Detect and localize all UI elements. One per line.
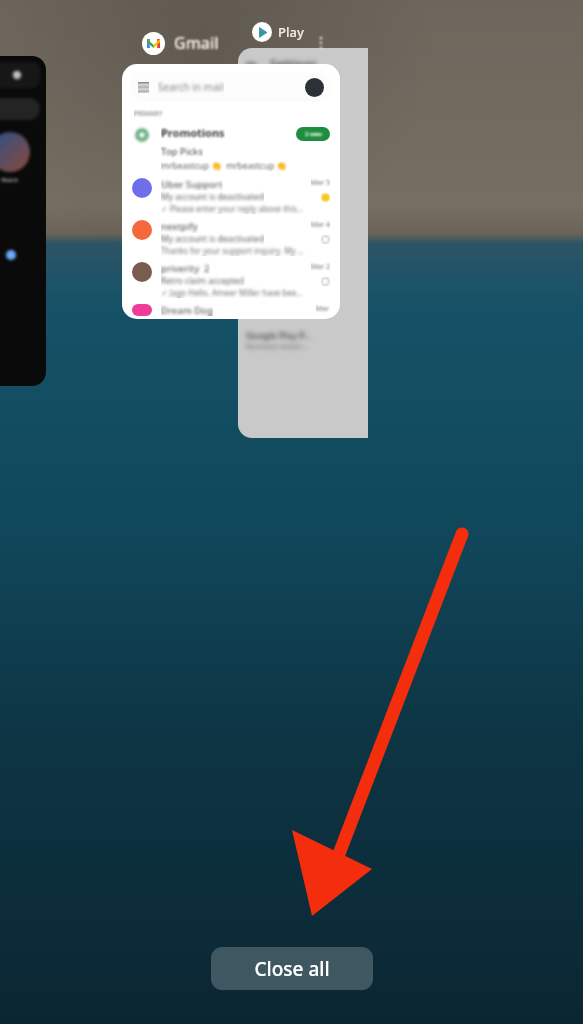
staticText: Over Wi-Fi on… [246,161,300,171]
button[interactable]: Close all [211,947,373,990]
staticText: Search in mail [158,80,224,94]
staticText: priverity 2 [161,262,210,275]
button[interactable]: Edit [0,62,40,88]
staticText: My account is deactivated [161,191,264,203]
button[interactable]: nextpify [132,220,330,256]
staticText: Auto-play vide… [246,233,303,243]
staticText: Top Picks [161,145,203,158]
button[interactable]: 2 new [296,127,330,141]
staticText: Removes instan… [246,341,308,351]
staticText: My account is deactivated [161,233,264,245]
staticText: Mar [316,304,330,314]
staticText: 2 new [305,130,322,138]
staticText: Watch [1,176,19,184]
button[interactable]: Uber Support [132,178,330,214]
staticText: Uber Support [161,178,223,191]
button[interactable]: More options [308,30,334,56]
button[interactable]: Search in mail [130,72,332,102]
button[interactable]: Account [305,78,324,97]
staticText: Mar 5 [311,178,330,188]
staticText: ✓ Jago Hello, Ameer Miller have been… [161,287,307,298]
staticText: Mar 2 [311,262,330,272]
staticText: nextpify [161,220,198,233]
staticText: Play [278,23,304,41]
staticText: ✓ Please enter your reply above this… [161,203,304,214]
staticText: Promotions [161,125,225,140]
staticText: Retro claim accepted [161,275,245,287]
staticText: Thanks for your support inquiry. My a… [161,245,307,256]
button[interactable]: Cloud [0,56,46,386]
button[interactable]: Dream Dog [132,304,330,316]
staticText: Settings [270,56,317,72]
staticText: Gmail [174,32,219,54]
button[interactable]: Settings [238,48,368,438]
staticText: Auto-update a… [246,197,303,207]
staticText: PRIMARY [134,109,163,118]
staticText: Close all [254,956,330,982]
button[interactable]: Promotions [132,125,330,172]
staticText: Google Play P… [246,329,311,341]
staticText: mrbeastcup 👏 mrbeastcup 👏 [161,160,287,172]
staticText: Auto-update a… [246,185,315,197]
staticText: Manage notif… [246,125,299,135]
staticText: Dream Dog [161,304,213,316]
button[interactable]: Search in mail [122,64,340,319]
staticText: Mar 4 [311,220,330,230]
staticText: Clear local se… [246,293,310,305]
button[interactable]: priverity 2 [132,262,330,298]
